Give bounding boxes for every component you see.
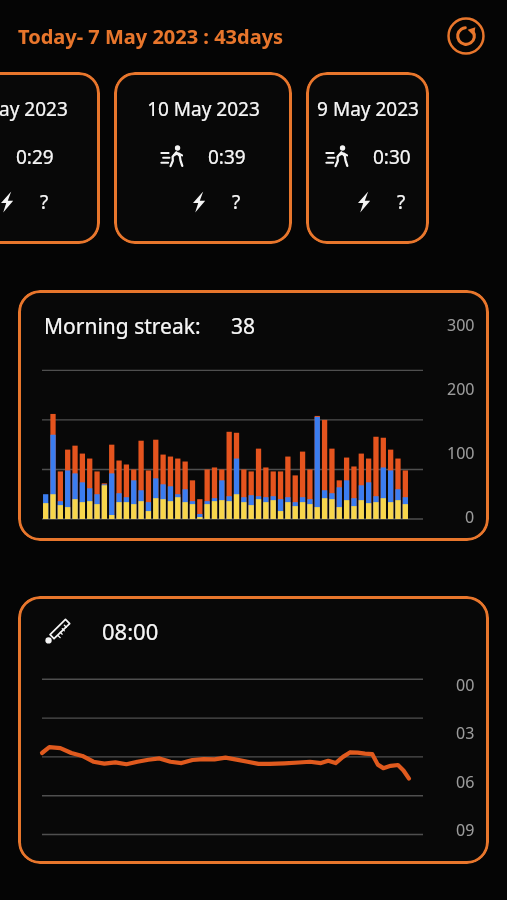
staticText: 03: [456, 722, 475, 744]
staticText: 08:00: [102, 616, 159, 646]
staticText: ?: [397, 189, 406, 215]
button[interactable]: 9 May 2023: [306, 72, 429, 244]
staticText: Today- 7 May 2023 : 43days: [18, 23, 284, 50]
staticText: Morning streak:: [44, 312, 201, 341]
staticText: 9 May 2023: [317, 96, 419, 122]
staticText: 09: [456, 819, 475, 841]
staticText: ?: [232, 189, 241, 215]
staticText: 06: [456, 771, 475, 793]
button[interactable]: 11 May 2023: [0, 72, 100, 244]
staticText: 10 May 2023: [147, 96, 260, 122]
button[interactable]: 08:00: [18, 596, 489, 864]
staticText: 38: [231, 312, 256, 341]
button[interactable]: Refresh: [447, 17, 485, 55]
button[interactable]: 10 May 2023: [114, 72, 292, 244]
staticText: 0:29: [16, 144, 54, 170]
staticText: 00: [456, 674, 475, 696]
staticText: 11 May 2023: [0, 96, 68, 122]
staticText: 0:39: [208, 144, 246, 170]
staticText: ?: [40, 189, 49, 215]
staticText: 300: [447, 314, 475, 336]
staticText: 200: [447, 378, 475, 400]
staticText: 100: [447, 442, 475, 464]
staticText: 0: [465, 506, 475, 528]
staticText: 0:30: [373, 144, 411, 170]
button[interactable]: Morning streak:: [18, 290, 489, 541]
